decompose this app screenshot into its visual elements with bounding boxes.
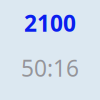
staticText: 50:16 [21,53,79,83]
staticText: 2100 [24,8,76,38]
